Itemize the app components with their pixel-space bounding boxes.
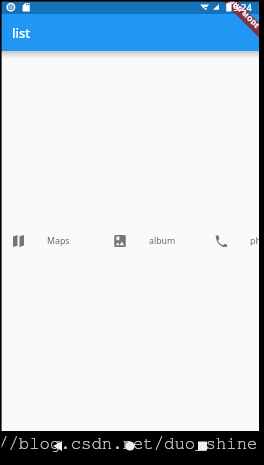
button[interactable]: Home: [121, 436, 141, 456]
staticText: phone: [250, 235, 264, 247]
staticText: //blog.csdn.net/duo_shine: [0, 435, 258, 452]
other: Maps: [13, 235, 24, 247]
button[interactable]: phone: [202, 235, 264, 247]
button[interactable]: album: [101, 235, 202, 247]
staticText: 9:24: [233, 1, 252, 14]
button[interactable]: Recents: [193, 436, 213, 456]
staticText: DEBUG MODE: [221, 0, 262, 30]
staticText: Maps: [47, 235, 70, 247]
other: album: [114, 235, 126, 247]
button[interactable]: Back: [49, 436, 69, 456]
other: phone: [215, 235, 227, 247]
button[interactable]: Maps: [0, 235, 101, 247]
staticText: list: [12, 24, 31, 42]
staticText: album: [149, 235, 176, 247]
